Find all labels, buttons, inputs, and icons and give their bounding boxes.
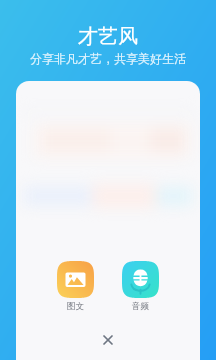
staticText: 才艺风 xyxy=(78,24,138,49)
button[interactable]: Close xyxy=(94,326,122,354)
staticText: 分享非凡才艺，共享美好生活 xyxy=(30,51,186,66)
button[interactable]: Create image post xyxy=(57,261,94,312)
button[interactable]: Create audio post xyxy=(122,261,159,312)
staticText: 音频 xyxy=(132,301,149,312)
staticText: 图文 xyxy=(67,301,84,312)
